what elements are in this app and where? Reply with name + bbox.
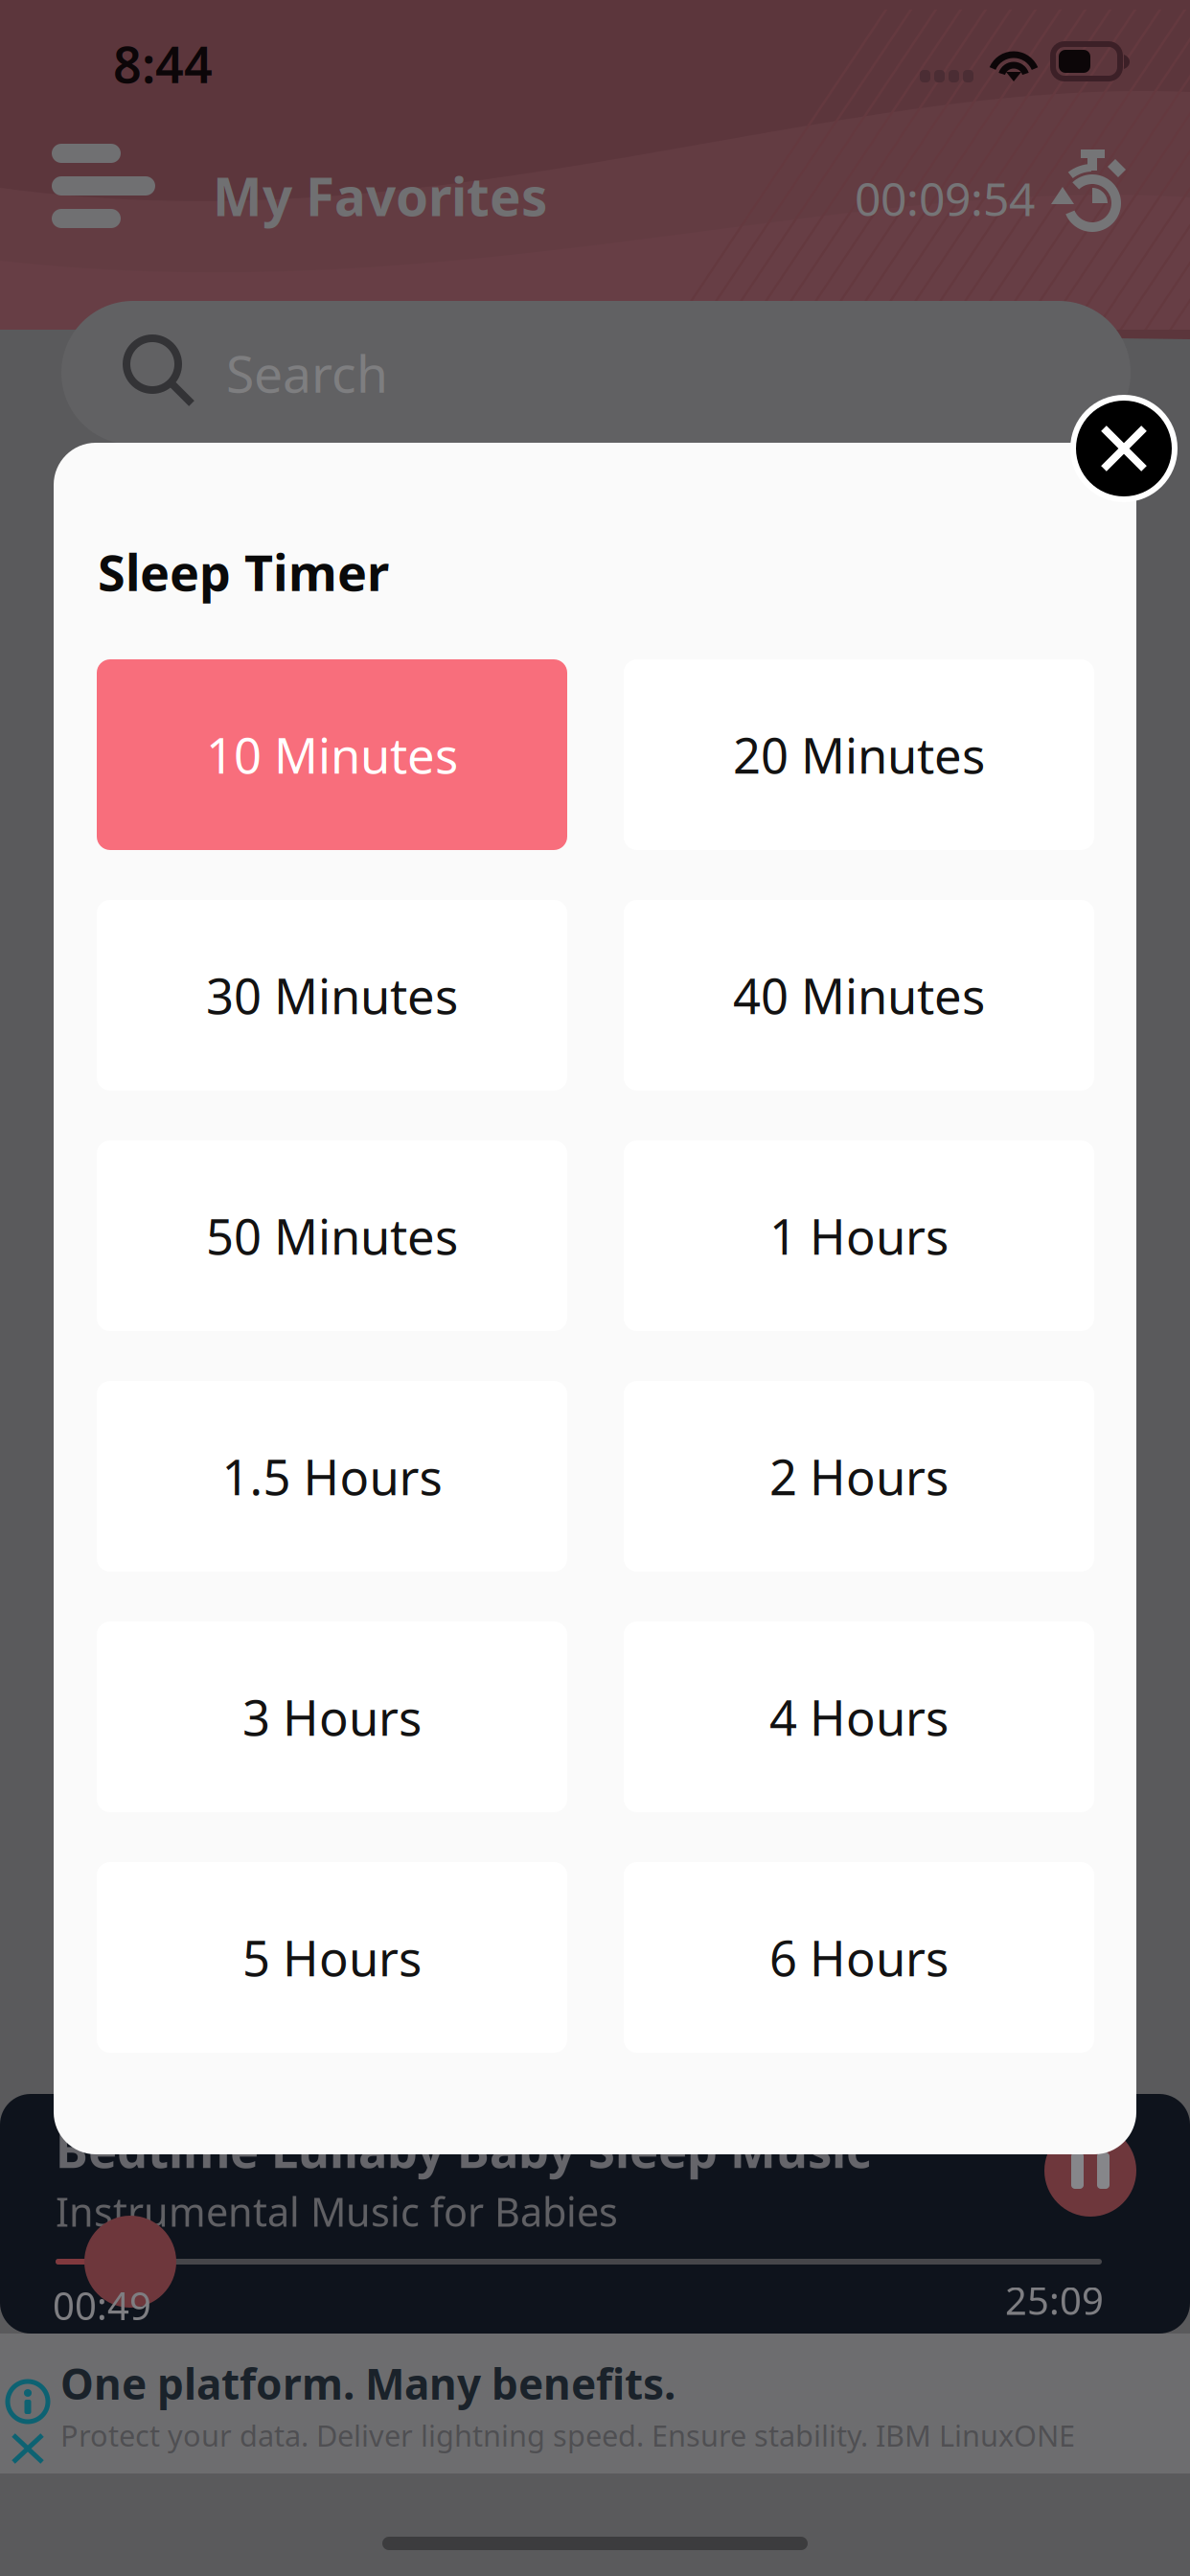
staticText: 6 Hours <box>769 1925 949 1990</box>
staticText: Protect your data. Deliver lightning spe… <box>60 2416 1075 2455</box>
button[interactable]: 10 Minutes <box>97 659 567 850</box>
button[interactable]: Close ad <box>6 2426 50 2470</box>
staticText: 00:09:54 <box>855 168 1035 229</box>
staticText: 40 Minutes <box>733 963 985 1028</box>
button[interactable]: 4 Hours <box>624 1621 1094 1812</box>
button[interactable]: 40 Minutes <box>624 900 1094 1091</box>
button[interactable]: Menu <box>52 140 155 232</box>
staticText: 5 Hours <box>242 1925 422 1990</box>
staticText: 4 Hours <box>769 1685 949 1749</box>
staticText: Instrumental Music for Babies <box>56 2185 618 2238</box>
staticText: One platform. Many benefits. <box>60 2355 675 2411</box>
staticText: Sleep Timer <box>98 539 389 605</box>
button[interactable]: 50 Minutes <box>97 1140 567 1331</box>
staticText: 25:09 <box>1005 2275 1104 2325</box>
staticText: My Favorites <box>213 161 547 231</box>
staticText: 20 Minutes <box>733 722 985 787</box>
button[interactable]: 30 Minutes <box>97 900 567 1091</box>
staticText: 3 Hours <box>242 1685 422 1749</box>
staticText: 2 Hours <box>769 1444 949 1509</box>
button[interactable]: 20 Minutes <box>624 659 1094 850</box>
button[interactable]: 2 Hours <box>624 1381 1094 1572</box>
staticText: 50 Minutes <box>206 1204 458 1268</box>
button[interactable]: Ad information <box>6 2380 50 2424</box>
staticText: Search <box>226 339 388 407</box>
button[interactable]: 5 Hours <box>97 1862 567 2053</box>
staticText: 8:44 <box>113 31 213 97</box>
button[interactable]: Close <box>1070 395 1178 502</box>
staticText: 1.5 Hours <box>222 1444 442 1509</box>
button[interactable]: 3 Hours <box>97 1621 567 1812</box>
staticText: 10 Minutes <box>206 722 458 787</box>
staticText: 1 Hours <box>769 1204 949 1268</box>
button[interactable]: Sleep timer <box>1050 144 1133 232</box>
button[interactable]: Pause <box>1044 2125 1136 2217</box>
staticText: Bedtime Lullaby Baby Sleep Music <box>56 2117 871 2181</box>
staticText: 00:49 <box>53 2280 151 2331</box>
staticText: 30 Minutes <box>206 963 458 1028</box>
button[interactable]: 1.5 Hours <box>97 1381 567 1572</box>
button[interactable]: 6 Hours <box>624 1862 1094 2053</box>
button[interactable]: 1 Hours <box>624 1140 1094 1331</box>
